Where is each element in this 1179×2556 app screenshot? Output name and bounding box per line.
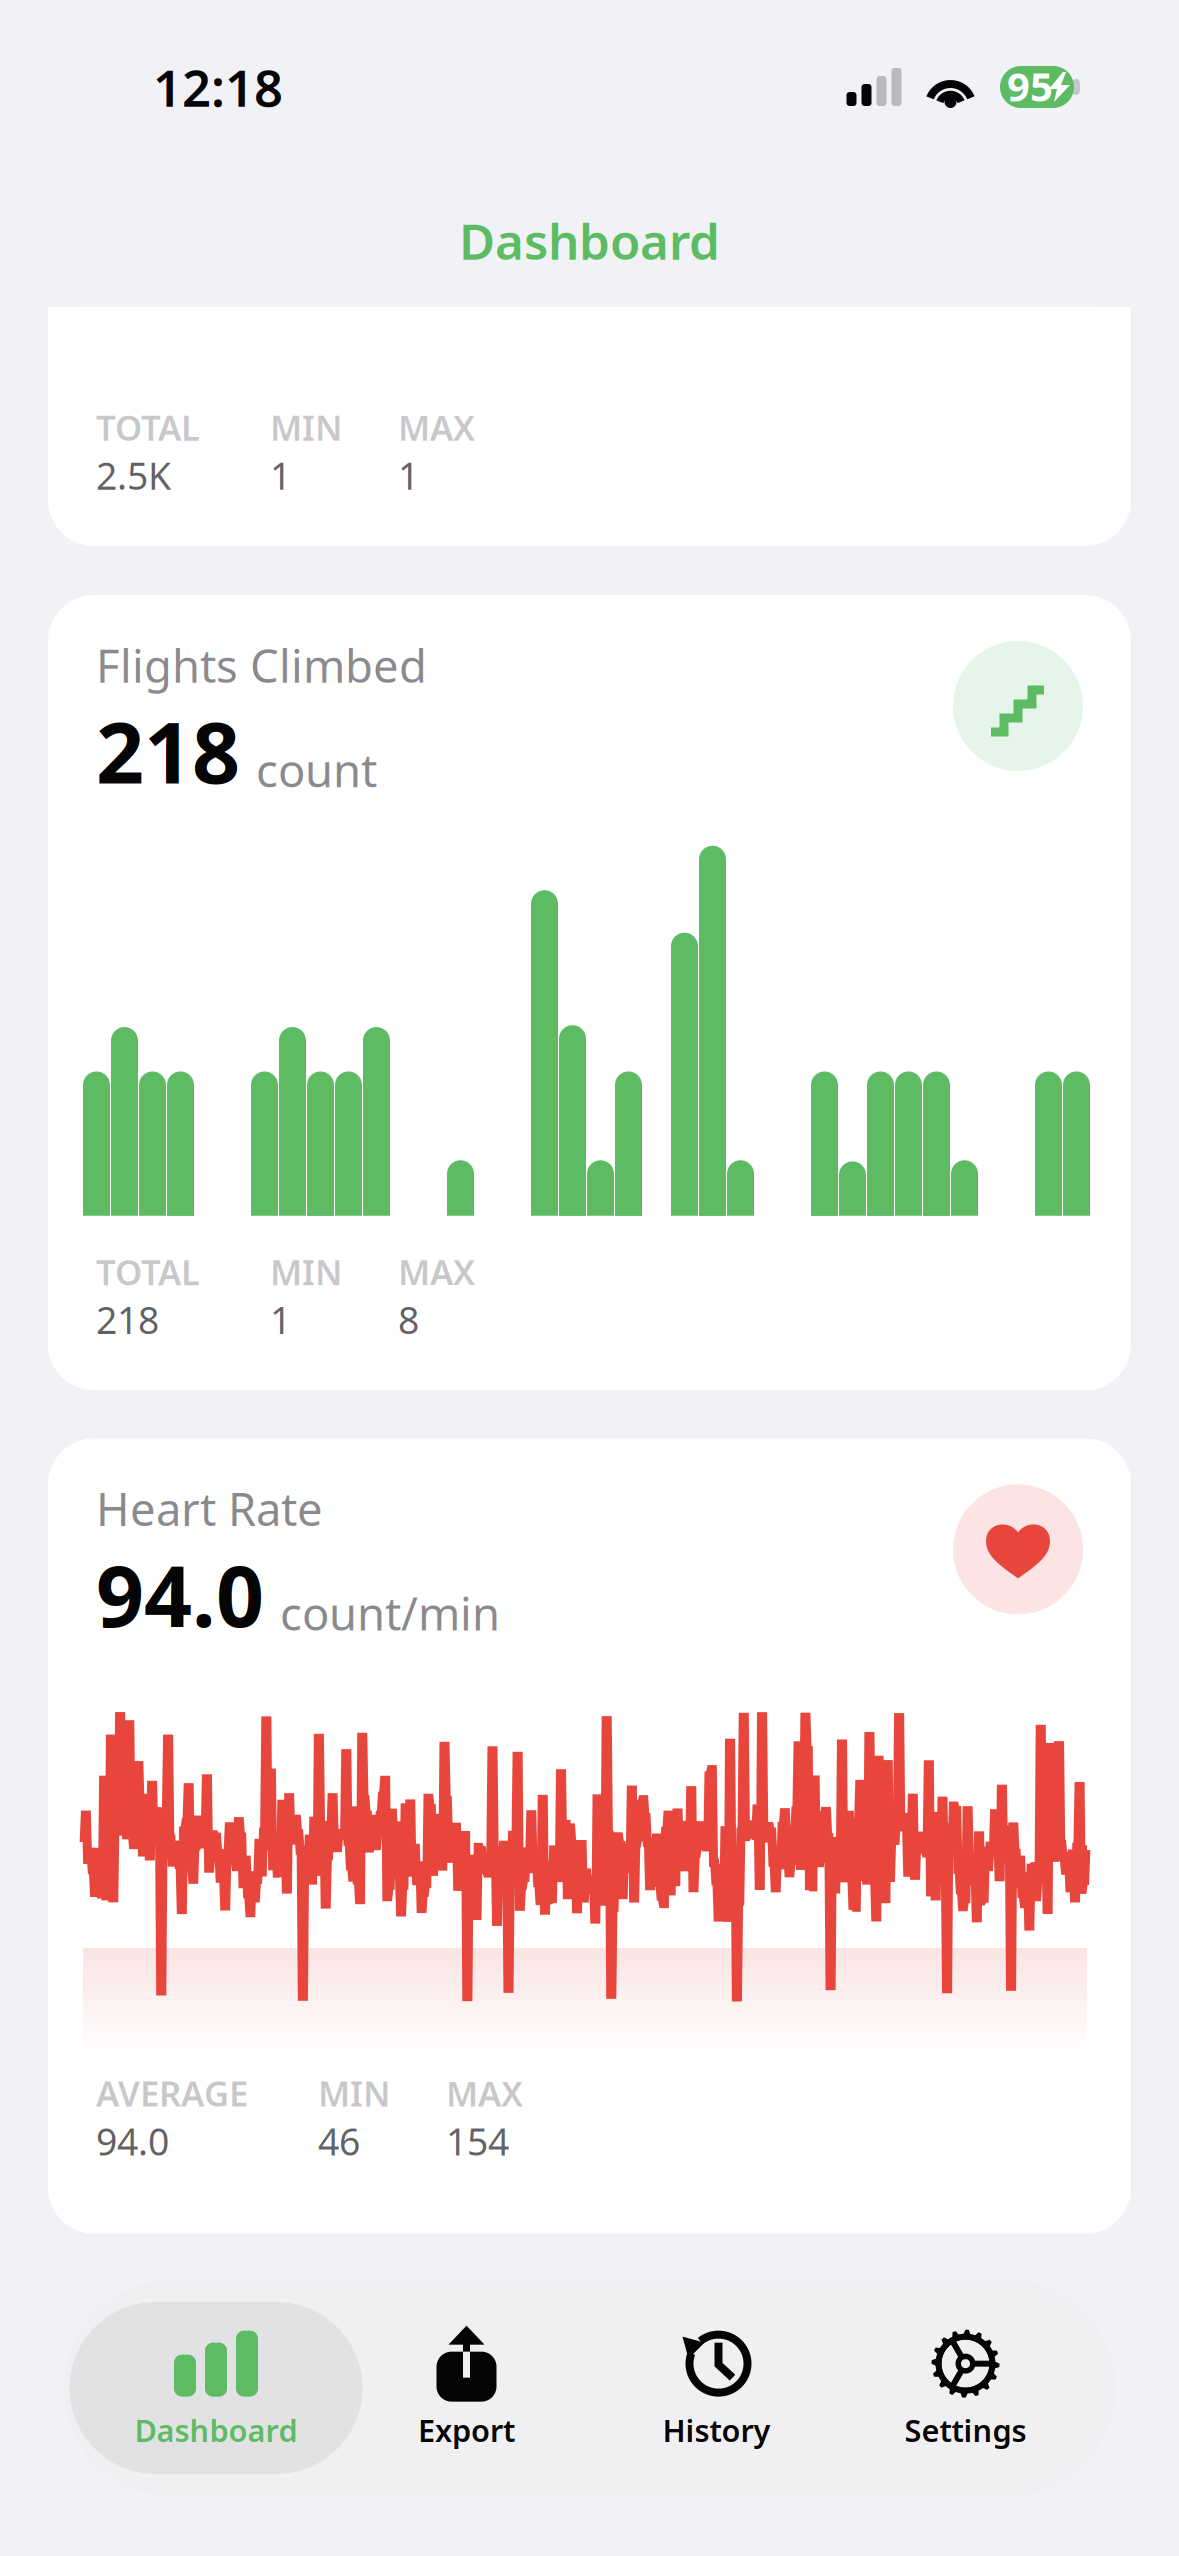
- staticText: TOTAL: [96, 1249, 200, 1295]
- staticText: 154: [446, 2116, 509, 2166]
- staticText: count/min: [280, 1583, 500, 1643]
- staticText: 8: [398, 1295, 419, 1344]
- staticText: count: [256, 739, 377, 800]
- staticText: MIN: [270, 1249, 342, 1295]
- staticText: Flights Climbed: [96, 635, 427, 695]
- staticText: Dashboard: [459, 208, 720, 273]
- staticText: 2.5K: [96, 450, 171, 500]
- staticText: MIN: [318, 2070, 390, 2116]
- staticText: 1: [270, 1295, 291, 1344]
- staticText: 95: [1007, 59, 1053, 112]
- staticText: MIN: [270, 404, 342, 450]
- staticText: Dashboard: [134, 2410, 297, 2450]
- staticText: 1: [398, 450, 419, 500]
- staticText: 218: [96, 695, 240, 807]
- staticText: MAX: [446, 2070, 523, 2116]
- staticText: MAX: [398, 404, 475, 450]
- staticText: TOTAL: [96, 404, 200, 450]
- button[interactable]: Export: [351, 2302, 581, 2474]
- staticText: 94.0: [96, 2116, 169, 2166]
- staticText: 94.0: [96, 1539, 264, 1650]
- staticText: 46: [318, 2116, 360, 2166]
- button[interactable]: Dashboard: [69, 2302, 362, 2474]
- staticText: 12:18: [153, 53, 283, 121]
- button[interactable]: History: [601, 2302, 831, 2474]
- staticText: 1: [270, 450, 291, 500]
- button[interactable]: Settings: [850, 2302, 1080, 2474]
- staticText: 218: [96, 1295, 159, 1344]
- staticText: Heart Rate: [96, 1478, 323, 1539]
- staticText: MAX: [398, 1249, 475, 1295]
- staticText: Settings: [904, 2410, 1026, 2450]
- staticText: Export: [418, 2410, 515, 2450]
- staticText: AVERAGE: [96, 2070, 248, 2116]
- staticText: History: [662, 2410, 770, 2450]
